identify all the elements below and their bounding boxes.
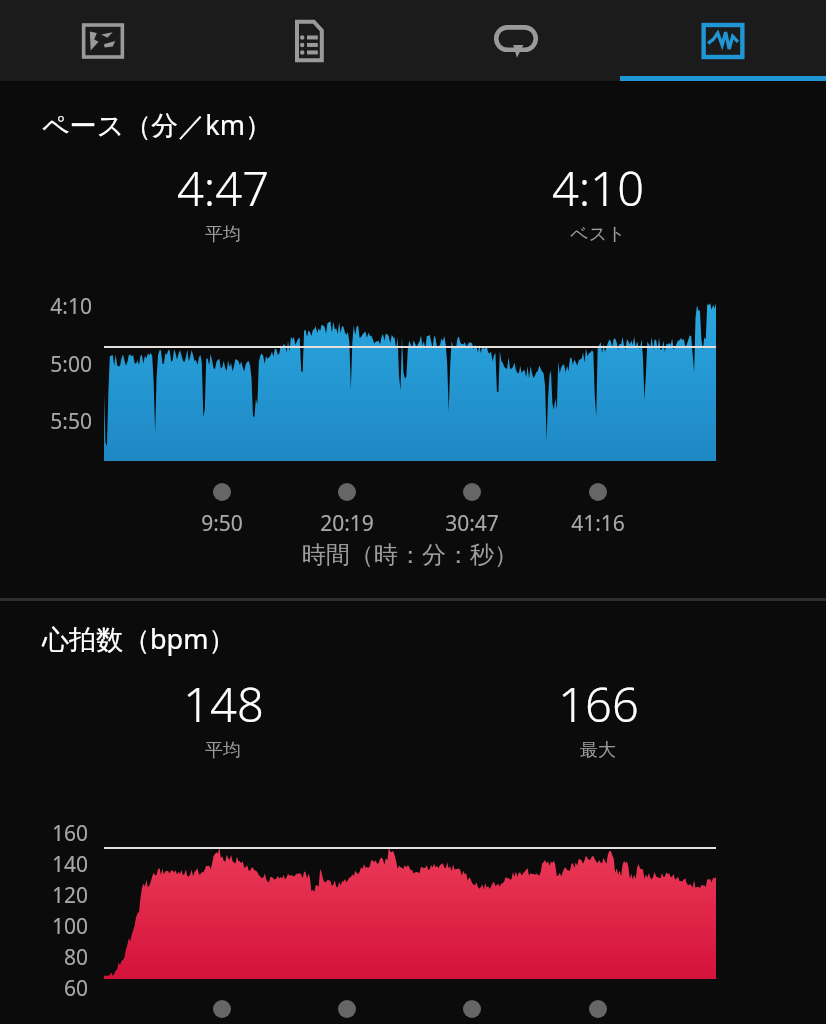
staticText: 心拍数（bpm）: [42, 620, 236, 657]
staticText: 140: [20, 850, 88, 879]
staticText: 4:10: [552, 156, 644, 220]
button[interactable]: Charts: [619, 0, 826, 81]
button[interactable]: Laps: [412, 0, 619, 81]
staticText: 60: [20, 974, 88, 1003]
staticText: 5:50: [20, 407, 92, 436]
staticText: 100: [20, 912, 88, 941]
staticText: 平均: [205, 739, 241, 762]
staticText: 148: [183, 672, 264, 736]
staticText: 時間（時：分：秒）: [150, 540, 670, 570]
button[interactable]: Map: [0, 0, 206, 81]
staticText: 20:19: [287, 509, 407, 538]
staticText: 5:00: [20, 350, 92, 379]
staticText: 4:47: [177, 156, 269, 220]
staticText: 80: [20, 943, 88, 972]
staticText: 30:47: [412, 509, 532, 538]
staticText: 160: [20, 819, 88, 848]
staticText: 41:16: [538, 509, 658, 538]
staticText: 最大: [580, 739, 616, 762]
staticText: 9:50: [162, 509, 282, 538]
staticText: 120: [20, 881, 88, 910]
staticText: ベスト: [570, 223, 626, 246]
staticText: 平均: [205, 223, 241, 246]
staticText: 4:10: [20, 292, 92, 321]
button[interactable]: Details: [206, 0, 412, 81]
staticText: 166: [558, 672, 639, 736]
staticText: ペース（分／km）: [42, 106, 272, 143]
